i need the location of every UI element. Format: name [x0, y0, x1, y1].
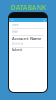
- staticText: +: [43, 17, 45, 23]
- staticText: Email: [12, 30, 18, 33]
- button[interactable]: Submit: [9, 48, 47, 52]
- button[interactable]: Address: [9, 41, 47, 48]
- button[interactable]: Name: [9, 22, 47, 29]
- staticText: Address: [12, 42, 23, 45]
- button[interactable]: Back: [9, 18, 13, 22]
- button[interactable]: Email: [9, 29, 47, 36]
- staticText: DATABANK: [10, 3, 45, 12]
- button[interactable]: Add: [43, 18, 47, 22]
- staticText: Account Name: [12, 36, 41, 41]
- staticText: <: [11, 17, 13, 23]
- staticText: Name: [12, 23, 19, 26]
- staticText: Submit: [12, 48, 22, 52]
